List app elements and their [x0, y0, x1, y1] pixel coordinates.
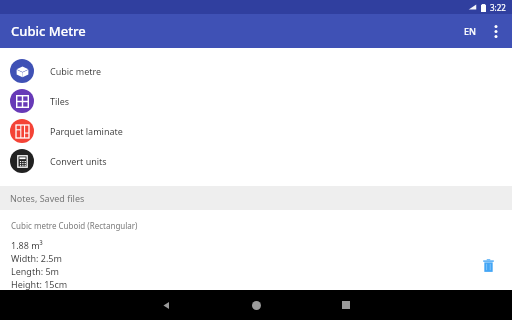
button[interactable]: Home — [211, 290, 301, 320]
staticText: Tiles — [50, 95, 70, 107]
button[interactable]: Cubic metre Cuboid (Rectangular) — [0, 210, 512, 290]
staticText: Cubic metre — [50, 65, 102, 77]
staticText: Height: 15cm — [11, 278, 68, 290]
staticText: Cubic Metre — [11, 22, 86, 40]
button[interactable]: Recent apps — [301, 290, 391, 320]
button[interactable]: Delete note — [478, 256, 498, 276]
staticText: Parquet laminate — [50, 125, 123, 137]
staticText: Length: 5m — [11, 265, 60, 277]
button[interactable]: Cubic metre — [0, 56, 512, 86]
button[interactable]: Parquet laminate — [0, 116, 512, 146]
button[interactable]: Convert units — [0, 146, 512, 176]
staticText: Notes, Saved files — [10, 192, 85, 204]
button[interactable]: Back — [121, 290, 211, 320]
button[interactable]: EN — [456, 14, 484, 48]
staticText: Cubic metre Cuboid (Rectangular) — [11, 220, 138, 231]
staticText: 1.88 m³ — [11, 239, 43, 251]
staticText: Width: 2.5m — [11, 252, 62, 264]
button[interactable]: Notes, Saved files — [0, 186, 512, 210]
staticText: EN — [464, 25, 476, 37]
button[interactable]: More options — [484, 14, 508, 48]
button[interactable]: Tiles — [0, 86, 512, 116]
staticText: Convert units — [50, 155, 107, 167]
staticText: 3:22 — [490, 2, 506, 13]
